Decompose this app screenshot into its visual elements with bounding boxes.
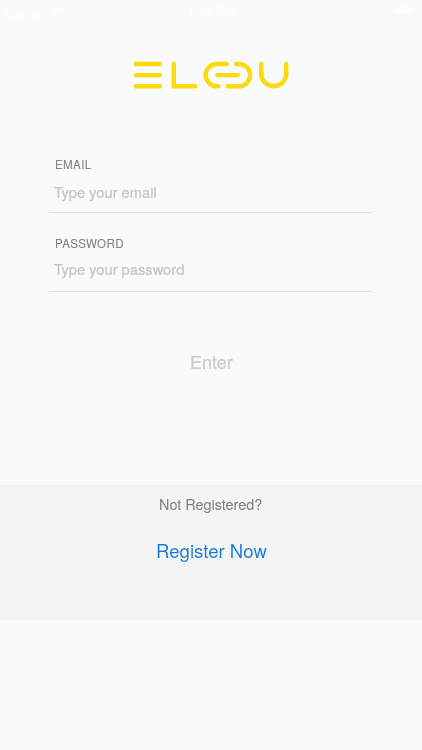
staticText: Enter <box>190 348 233 374</box>
staticText: Type your password <box>54 258 185 279</box>
button[interactable]: Register Now <box>0 534 422 566</box>
staticText: Not Registered? <box>159 493 263 514</box>
staticText: PASSWORD <box>55 235 124 252</box>
staticText: EMAIL <box>55 156 92 173</box>
staticText: Type your email <box>54 181 157 202</box>
staticText: Register Now <box>156 537 267 564</box>
button[interactable]: Enter <box>0 340 422 382</box>
